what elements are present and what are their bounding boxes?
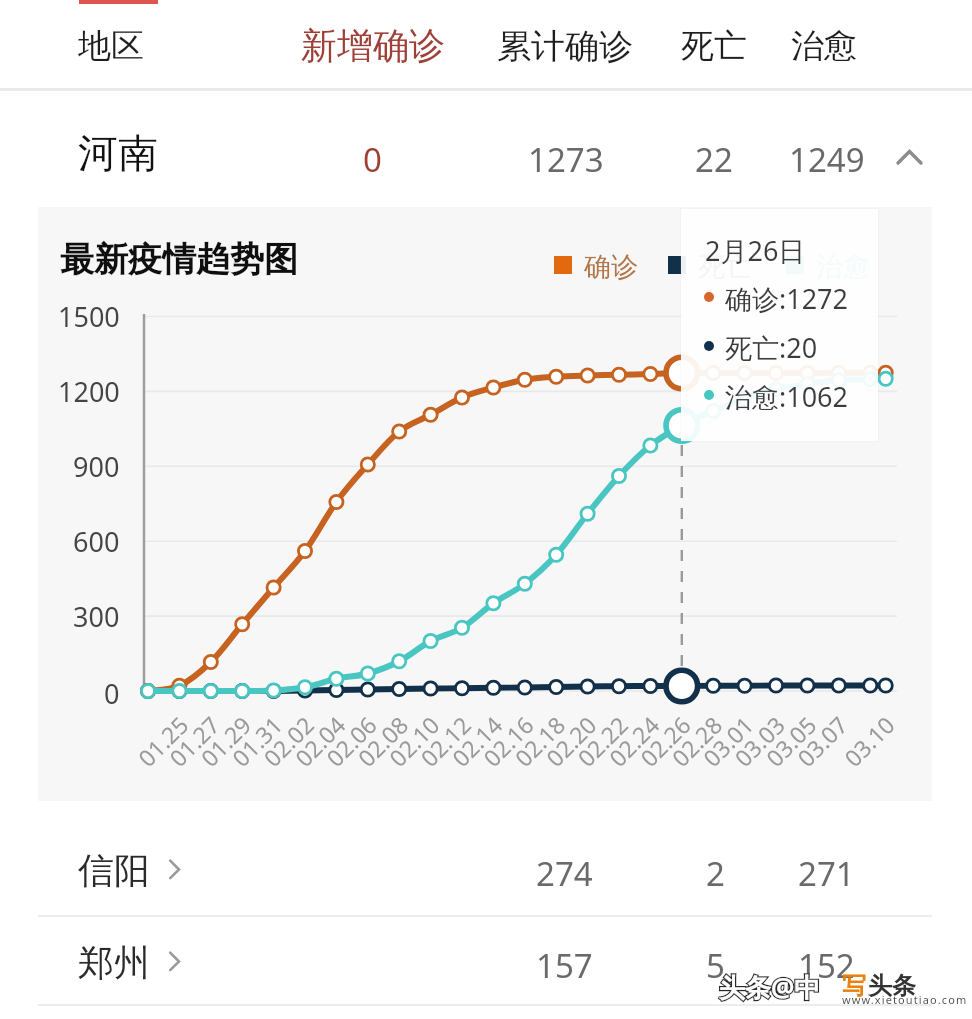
staticText: 157 — [536, 943, 593, 988]
button[interactable] — [0, 91, 972, 183]
staticText: 信阳 — [78, 848, 150, 893]
staticText: 900 — [73, 448, 120, 485]
staticText: 1200 — [58, 373, 120, 410]
button[interactable]: 累计确诊 — [497, 25, 633, 68]
staticText: 0 — [104, 675, 120, 712]
staticText: 1273 — [528, 137, 604, 182]
staticText: 治愈 — [816, 250, 870, 284]
staticText: 274 — [536, 851, 593, 896]
button[interactable]: 治愈 — [791, 25, 857, 67]
staticText: 地区 — [78, 25, 144, 67]
staticText: 5 — [706, 943, 725, 988]
staticText: 治愈:1062 — [725, 378, 849, 415]
staticText: 1500 — [58, 298, 120, 335]
staticText: 死亡:20 — [725, 329, 818, 366]
staticText: 600 — [73, 523, 120, 560]
button[interactable] — [0, 918, 972, 1008]
staticText: 271 — [798, 851, 855, 896]
staticText: 死亡 — [698, 250, 752, 284]
staticText: 22 — [695, 137, 733, 182]
button[interactable] — [0, 826, 972, 916]
staticText: 最新疫情趋势图 — [60, 238, 298, 281]
staticText: 确诊 — [584, 250, 638, 284]
staticText: 郑州 — [78, 940, 150, 985]
staticText: 河南 — [78, 128, 158, 178]
staticText: 确诊:1272 — [725, 280, 849, 317]
staticText: 1249 — [789, 137, 865, 182]
button[interactable]: 新增确诊 — [301, 23, 445, 68]
button[interactable]: 死亡 — [681, 25, 747, 67]
button[interactable]: Collapse — [880, 120, 940, 180]
staticText: 152 — [798, 943, 855, 988]
staticText: 300 — [73, 598, 120, 635]
staticText: 2月26日 — [705, 232, 806, 269]
staticText: 2 — [706, 851, 725, 896]
button[interactable] — [64, 14, 182, 72]
staticText: 0 — [363, 137, 382, 182]
